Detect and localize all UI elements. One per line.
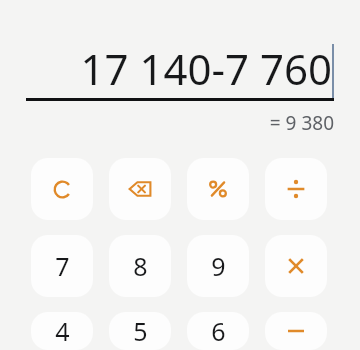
button[interactable]: 8 [109,235,171,297]
button[interactable]: Multiply [265,235,327,297]
staticText: 7 [55,249,70,283]
staticText: 8 [133,249,148,283]
staticText: 5 [133,314,148,348]
button[interactable]: Divide [265,158,327,220]
button[interactable]: 9 [187,235,249,297]
staticText: 6 [211,314,226,348]
button[interactable]: 7 [31,235,93,297]
button[interactable]: Clear [31,158,93,220]
staticText: 4 [55,314,70,348]
button[interactable]: 6 [187,312,249,350]
staticText: 17 140-7 760 [80,40,332,97]
button[interactable]: Backspace [109,158,171,220]
button[interactable]: 4 [31,312,93,350]
button[interactable]: Percent [187,158,249,220]
button[interactable]: 5 [109,312,171,350]
staticText: = 9 380 [269,110,334,136]
staticText: 9 [211,249,226,283]
button[interactable]: Subtract [265,312,327,350]
